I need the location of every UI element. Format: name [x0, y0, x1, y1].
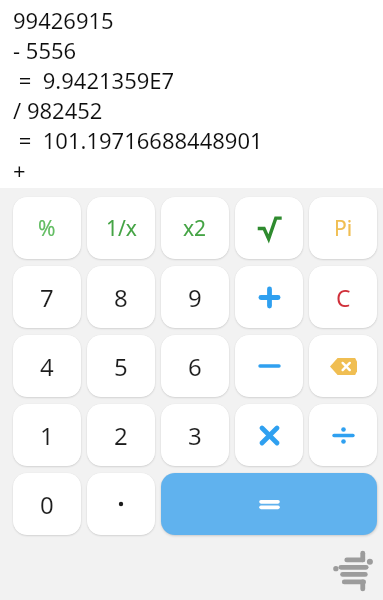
staticText: %: [38, 214, 56, 243]
button[interactable]: 8: [87, 266, 155, 328]
button[interactable]: 5: [87, 335, 155, 397]
staticText: - 5556: [13, 35, 77, 65]
staticText: C: [336, 282, 351, 313]
button[interactable]: Decimal point: [87, 473, 155, 535]
button[interactable]: Minus: [235, 335, 303, 397]
staticText: 7: [40, 281, 54, 314]
staticText: 3: [188, 419, 202, 452]
staticText: 9: [188, 281, 202, 314]
staticText: 2: [114, 419, 128, 452]
button[interactable]: 1/x: [87, 197, 155, 259]
button[interactable]: x2: [161, 197, 229, 259]
button[interactable]: Pi: [309, 197, 377, 259]
button[interactable]: Backspace: [309, 335, 377, 397]
staticText: 6: [188, 350, 202, 383]
button[interactable]: Plus: [235, 266, 303, 328]
staticText: = 9.9421359E7: [13, 65, 175, 95]
button[interactable]: 9: [161, 266, 229, 328]
staticText: = 101.19716688448901: [13, 125, 263, 155]
button[interactable]: 1: [13, 404, 81, 466]
staticText: 99426915: [13, 5, 114, 35]
staticText: 8: [114, 281, 128, 314]
staticText: x2: [183, 214, 207, 243]
button[interactable]: Equals: [161, 473, 377, 535]
button[interactable]: Multiply: [235, 404, 303, 466]
button[interactable]: 0: [13, 473, 81, 535]
staticText: 0: [40, 488, 54, 521]
button[interactable]: Square root: [235, 197, 303, 259]
staticText: 1: [40, 419, 54, 452]
staticText: 1/x: [106, 214, 137, 243]
button[interactable]: 3: [161, 404, 229, 466]
button[interactable]: Divide: [309, 404, 377, 466]
staticText: Pi: [334, 214, 353, 243]
button[interactable]: C: [309, 266, 377, 328]
staticText: 5: [114, 350, 128, 383]
button[interactable]: 4: [13, 335, 81, 397]
button[interactable]: %: [13, 197, 81, 259]
button[interactable]: 6: [161, 335, 229, 397]
staticText: 4: [40, 350, 54, 383]
button[interactable]: 2: [87, 404, 155, 466]
staticText: +: [13, 155, 26, 185]
button[interactable]: 7: [13, 266, 81, 328]
staticText: / 982452: [13, 95, 103, 125]
